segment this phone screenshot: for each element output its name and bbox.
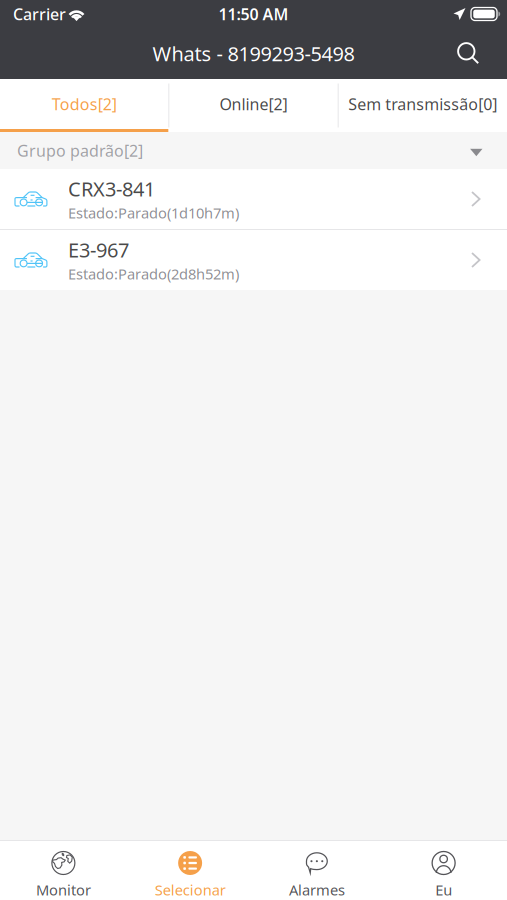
button[interactable]: Sem transmissão[0] (339, 79, 507, 132)
staticText: Whats - 8199293-5498 (152, 40, 354, 67)
staticText: Grupo padrão[2] (17, 140, 143, 161)
button[interactable]: Grupo padrão[2] (0, 132, 507, 169)
staticText: Estado:Parado(2d8h52m) (68, 264, 239, 283)
button[interactable]: E3-967 (0, 230, 507, 290)
button[interactable]: Search (441, 29, 507, 78)
button[interactable]: CRX3-841 (0, 169, 507, 229)
button[interactable]: Monitor (0, 841, 127, 900)
button[interactable]: Alarmes (253, 841, 380, 900)
staticText: CRX3-841 (68, 175, 155, 202)
staticText: Sem transmissão[0] (348, 93, 497, 115)
staticText: Estado:Parado(1d10h7m) (68, 203, 239, 222)
staticText: E3-967 (68, 236, 129, 263)
staticText: 11:50 AM (218, 3, 288, 25)
staticText: Carrier (13, 3, 66, 25)
staticText: Monitor (36, 880, 91, 899)
staticText: Todos[2] (52, 93, 117, 115)
staticText: Online[2] (219, 93, 287, 115)
button[interactable]: Eu (380, 841, 507, 900)
button[interactable]: Online[2] (169, 79, 338, 132)
staticText: Alarmes (289, 880, 345, 899)
button[interactable]: Todos[2] (0, 79, 168, 132)
button[interactable]: Selecionar (127, 841, 254, 900)
staticText: Selecionar (155, 880, 226, 899)
staticText: Eu (435, 880, 452, 899)
